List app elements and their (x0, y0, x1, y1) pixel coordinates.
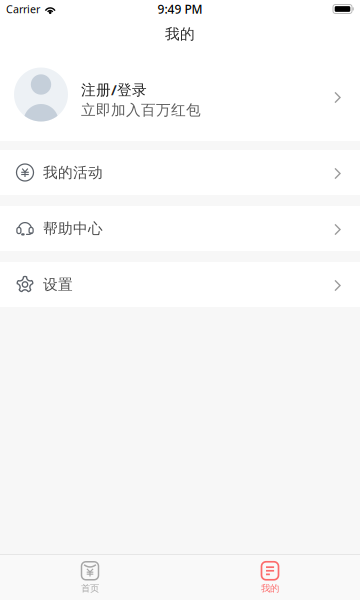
staticText: Carrier (6, 2, 40, 16)
button[interactable]: 帮助中心 (0, 206, 360, 251)
staticText: 注册/登录 (81, 80, 147, 99)
button[interactable]: 注册/登录 (0, 60, 360, 141)
staticText: 立即加入百万红包 (81, 101, 201, 119)
staticText: 我的活动 (43, 163, 103, 181)
staticText: 9:49 PM (157, 1, 202, 17)
staticText: 帮助中心 (43, 219, 103, 237)
button[interactable]: 我的 (180, 555, 360, 600)
button[interactable]: 首页 (0, 555, 180, 600)
staticText: 我的 (165, 25, 195, 43)
staticText: 我的 (261, 583, 279, 594)
button[interactable]: 设置 (0, 262, 360, 307)
staticText: 首页 (81, 583, 99, 594)
button[interactable]: 我的活动 (0, 150, 360, 195)
staticText: 设置 (43, 275, 73, 293)
